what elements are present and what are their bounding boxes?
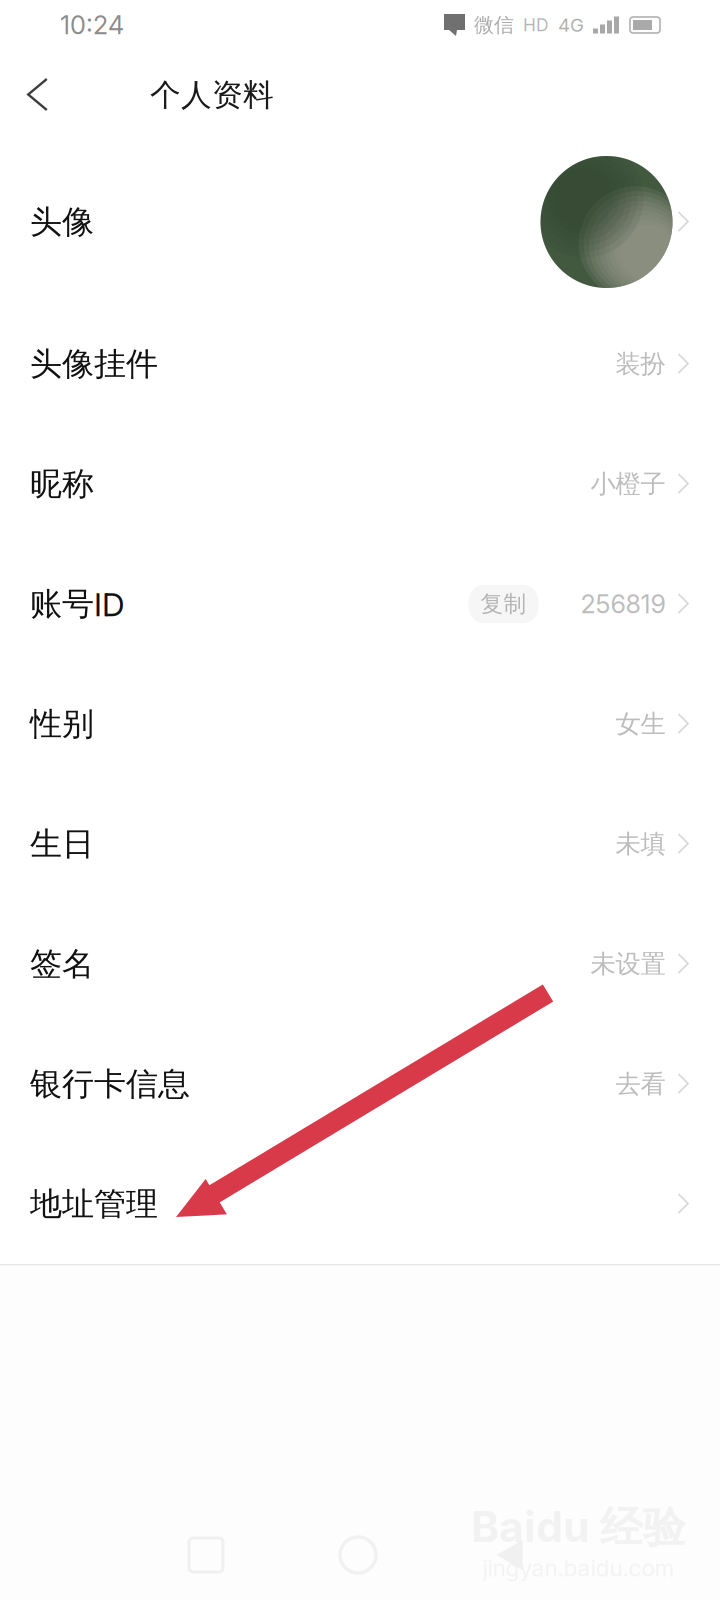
staticText: 4G xyxy=(558,14,584,36)
staticText: HD xyxy=(523,14,549,35)
button[interactable]: 账号ID xyxy=(0,544,720,664)
staticText: 性别 xyxy=(30,704,94,744)
staticText: 女生 xyxy=(615,708,665,740)
staticText: 头像 xyxy=(30,202,94,242)
staticText: 去看 xyxy=(615,1068,665,1100)
staticText: 账号ID xyxy=(30,584,125,624)
staticText: 装扮 xyxy=(615,348,665,380)
button[interactable]: 返回 xyxy=(0,61,64,129)
staticText: 未填 xyxy=(615,828,665,860)
button[interactable]: 生日 xyxy=(0,784,720,904)
button[interactable]: 头像 xyxy=(0,140,720,304)
staticText: jingyan.baidu.com xyxy=(482,1555,674,1582)
staticText: 小橙子 xyxy=(590,468,665,500)
button[interactable]: 返回 xyxy=(434,1522,586,1588)
staticText: 银行卡信息 xyxy=(30,1064,190,1104)
button[interactable]: 性别 xyxy=(0,664,720,784)
staticText: 生日 xyxy=(30,824,94,864)
staticText: 昵称 xyxy=(30,464,94,504)
button[interactable]: 昵称 xyxy=(0,424,720,544)
button[interactable]: 银行卡信息 xyxy=(0,1024,720,1144)
staticText: Baidu 经验 xyxy=(471,1501,686,1555)
staticText: 未设置 xyxy=(590,948,665,980)
staticText: 10:24 xyxy=(60,10,124,40)
button[interactable]: 签名 xyxy=(0,904,720,1024)
staticText: 签名 xyxy=(30,944,94,984)
staticText: 头像挂件 xyxy=(30,344,158,384)
button[interactable]: 地址管理 xyxy=(0,1144,720,1264)
staticText: 个人资料 xyxy=(150,76,274,114)
staticText: 256819 xyxy=(580,589,665,619)
staticText: 复制 xyxy=(480,590,526,618)
staticText: 地址管理 xyxy=(30,1184,158,1224)
button[interactable]: 头像挂件 xyxy=(0,304,720,424)
staticText: 微信 xyxy=(474,12,514,38)
